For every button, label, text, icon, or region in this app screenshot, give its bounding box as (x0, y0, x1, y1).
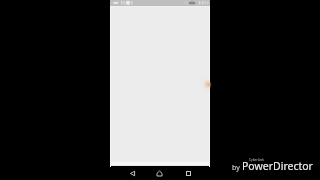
staticText: by (232, 163, 240, 173)
staticText: PowerDirector (242, 159, 313, 173)
button[interactable]: Back (124, 166, 141, 180)
button[interactable]: Home (151, 166, 168, 180)
button[interactable]: Recent apps (180, 166, 197, 180)
staticText: CyberLink (249, 158, 264, 162)
